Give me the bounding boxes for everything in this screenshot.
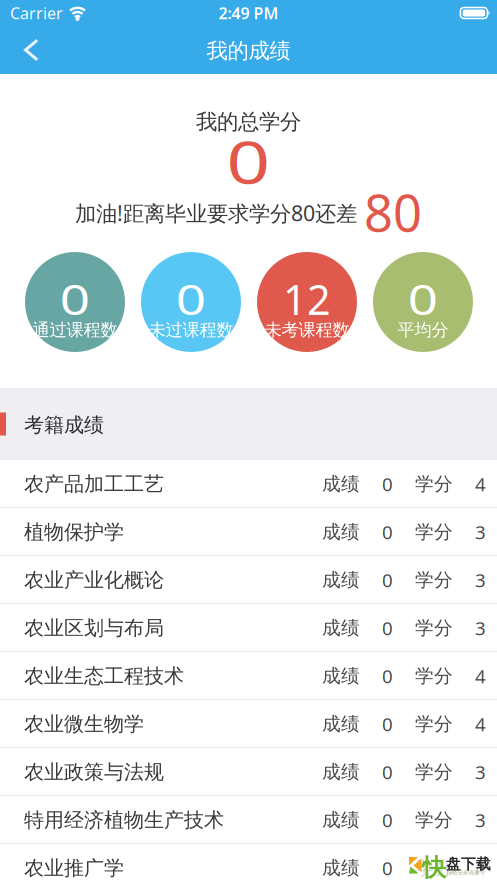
staticText: 农业区划与布局 [24,616,164,640]
staticText: 成绩 [322,760,360,783]
staticText: 学分 [415,616,453,639]
staticText: 学分 [415,568,453,591]
staticText: 我的成绩 [206,38,290,64]
staticText: 0 [411,272,435,326]
staticText: 成绩 [322,664,360,687]
staticText: 未考课程数 [264,319,349,341]
staticText: 盘下载 [446,855,491,873]
staticText: 12 [283,272,331,326]
staticText: 2:49 PM [218,2,278,24]
staticText: 成绩 [322,472,360,495]
staticText: 0 [382,760,393,784]
staticText: 80 [364,178,422,246]
staticText: 成绩 [322,712,360,735]
button[interactable]: 农业政策与法规 [0,748,497,796]
staticText: 3 [475,808,486,832]
staticText: 0 [382,520,393,544]
staticText: 农业推广学 [24,856,124,880]
staticText: 0 [382,664,393,688]
button[interactable]: 特用经济植物生产技术 [0,796,497,844]
staticText: 0 [63,272,87,326]
staticText: 0 [382,568,393,592]
staticText: 未过课程数 [148,319,233,341]
button[interactable]: 农产品加工工艺 [0,460,497,508]
button[interactable]: 农业生态工程技术 [0,652,497,700]
staticText: 4 [475,856,486,880]
button[interactable]: 农业区划与布局 [0,604,497,652]
staticText: 我的总学分 [196,109,301,135]
staticText: 0 [382,472,393,496]
staticText: 快 [422,853,446,882]
staticText: 成绩 [322,616,360,639]
staticText: 学分 [415,520,453,543]
staticText: 学分 [415,712,453,735]
button[interactable]: Back [0,27,51,73]
staticText: 3 [475,520,486,544]
staticText: 植物保护学 [24,520,124,544]
staticText: 3 [475,568,486,592]
staticText: Carrier [10,2,63,24]
staticText: 成绩 [322,520,360,543]
staticText: 4 [475,712,486,736]
staticText: 成绩 [322,808,360,831]
staticText: 0 [382,712,393,736]
staticText: 学分 [415,760,453,783]
staticText: 农业微生物学 [24,712,144,736]
staticText: 平均分 [397,319,448,341]
staticText: 4 [475,664,486,688]
button[interactable]: 农业推广学 [0,844,497,883]
staticText: 农产品加工工艺 [24,472,164,496]
staticText: 3 [475,760,486,784]
staticText: 0 [179,272,203,326]
staticText: 学分 [415,808,453,831]
staticText: 特用经济植物生产技术 [24,808,224,832]
staticText: 农业生态工程技术 [24,664,184,688]
staticText: 0 [382,808,393,832]
staticText: 农业产业化概论 [24,568,164,592]
staticText: 学分 [415,472,453,495]
staticText: 学分 [415,664,453,687]
staticText: 0 [382,616,393,640]
staticText: 0 [231,122,265,200]
staticText: 绿色·安全·高速 [447,869,479,876]
staticText: 农业政策与法规 [24,760,164,784]
button[interactable]: 植物保护学 [0,508,497,556]
button[interactable]: 农业产业化概论 [0,556,497,604]
staticText: 加油!距离毕业要求学分80还差 [75,199,357,227]
staticText: 0 [382,856,393,880]
staticText: 考籍成绩 [24,413,104,437]
staticText: 3 [475,616,486,640]
staticText: 成绩 [322,856,360,879]
staticText: 成绩 [322,568,360,591]
staticText: 4 [475,472,486,496]
staticText: 学分 [415,856,453,879]
button[interactable]: 农业微生物学 [0,700,497,748]
staticText: 通过课程数 [32,319,117,341]
